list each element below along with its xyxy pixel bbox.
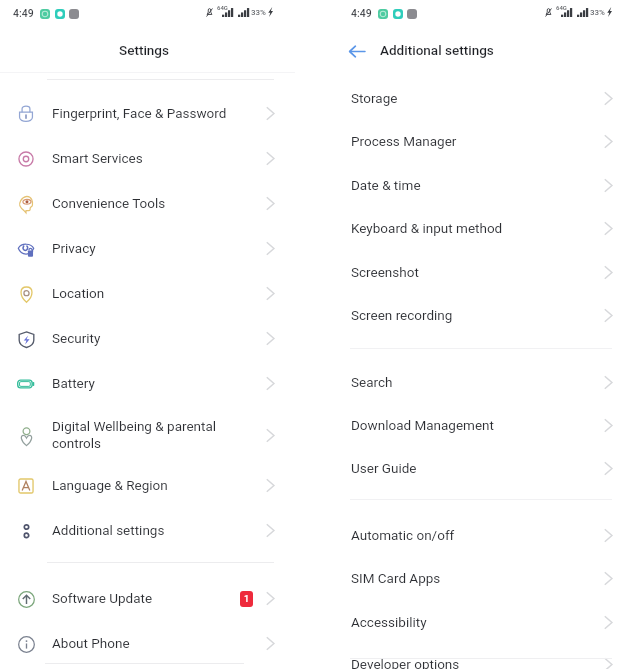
button[interactable]: About Phone bbox=[0, 622, 295, 666]
staticText: Privacy bbox=[52, 240, 96, 256]
staticText: About Phone bbox=[52, 635, 130, 651]
button[interactable]: SIM Card Apps bbox=[338, 558, 631, 601]
button[interactable]: Digital Wellbeing & parental controls bbox=[0, 414, 295, 459]
staticText: 33% bbox=[251, 8, 266, 17]
staticText: 4:49 bbox=[13, 7, 34, 19]
staticText: 64G bbox=[556, 4, 567, 11]
staticText: Digital Wellbeing & parental controls bbox=[52, 418, 217, 452]
button[interactable]: Language & Region bbox=[0, 464, 295, 508]
staticText: Storage bbox=[351, 90, 398, 106]
staticText: 64G bbox=[217, 4, 228, 11]
staticText: Location bbox=[52, 285, 105, 301]
staticText: Developer options bbox=[351, 656, 460, 669]
staticText: Additional settings bbox=[380, 42, 494, 58]
staticText: Additional settings bbox=[52, 522, 165, 538]
staticText: Screen recording bbox=[351, 307, 453, 323]
staticText: Automatic on/off bbox=[351, 527, 455, 543]
button[interactable]: Fingerprint, Face & Password bbox=[0, 92, 295, 136]
staticText: Security bbox=[52, 330, 101, 346]
button[interactable]: Keyboard & input method bbox=[338, 208, 631, 251]
staticText: 4:49 bbox=[351, 7, 372, 19]
button[interactable]: Automatic on/off bbox=[338, 515, 631, 558]
button[interactable]: Accessibility bbox=[338, 602, 631, 645]
staticText: Language & Region bbox=[52, 477, 168, 493]
staticText: Settings bbox=[119, 42, 169, 58]
staticText: User Guide bbox=[351, 460, 417, 476]
staticText: Keyboard & input method bbox=[351, 220, 503, 236]
button[interactable]: Storage bbox=[338, 78, 631, 121]
staticText: Process Manager bbox=[351, 133, 457, 149]
button[interactable]: Screen recording bbox=[338, 295, 631, 338]
staticText: Search bbox=[351, 374, 393, 390]
button[interactable]: Location bbox=[0, 272, 295, 316]
button[interactable]: Screenshot bbox=[338, 252, 631, 295]
button[interactable]: Download Management bbox=[338, 405, 631, 448]
button[interactable]: Back bbox=[340, 40, 373, 63]
staticText: Download Management bbox=[351, 417, 494, 433]
button[interactable]: User Guide bbox=[338, 448, 631, 491]
staticText: Date & time bbox=[351, 177, 421, 193]
button[interactable]: Security bbox=[0, 317, 295, 361]
staticText: Screenshot bbox=[351, 264, 419, 280]
staticText: SIM Card Apps bbox=[351, 570, 441, 586]
staticText: Battery bbox=[52, 375, 95, 391]
button[interactable]: Developer options bbox=[338, 644, 631, 669]
button[interactable]: Battery bbox=[0, 362, 295, 406]
staticText: 1 bbox=[244, 594, 250, 605]
button[interactable]: Search bbox=[338, 362, 631, 405]
staticText: Fingerprint, Face & Password bbox=[52, 105, 227, 121]
button[interactable]: Privacy bbox=[0, 227, 295, 271]
staticText: Convenience Tools bbox=[52, 195, 166, 211]
button[interactable]: Process Manager bbox=[338, 121, 631, 164]
button[interactable]: Convenience Tools bbox=[0, 182, 295, 226]
button[interactable]: Smart Services bbox=[0, 137, 295, 181]
staticText: Smart Services bbox=[52, 150, 143, 166]
staticText: Accessibility bbox=[351, 614, 427, 630]
button[interactable]: Additional settings bbox=[0, 509, 295, 553]
staticText: 33% bbox=[590, 8, 605, 17]
staticText: Software Update bbox=[52, 590, 153, 606]
button[interactable]: Software Update bbox=[0, 577, 295, 621]
button[interactable]: Date & time bbox=[338, 165, 631, 208]
